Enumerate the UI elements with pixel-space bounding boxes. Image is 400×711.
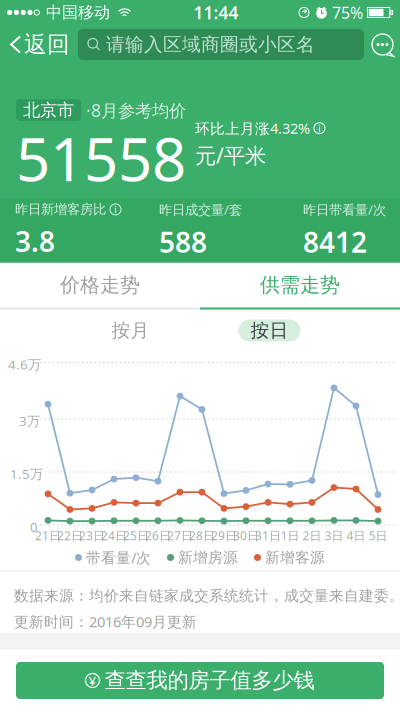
staticText: i	[318, 121, 321, 135]
staticText: 1.5万	[10, 465, 43, 483]
staticText: 请输入区域商圈或小区名	[106, 33, 315, 56]
staticText: 3.8	[15, 223, 55, 260]
staticText: 8412	[303, 223, 367, 260]
staticText: 元/平米	[195, 141, 266, 169]
button[interactable]: 请输入区域商圈或小区名	[78, 29, 364, 60]
staticText: 返回	[24, 31, 70, 58]
button[interactable]: 供需走势	[200, 262, 400, 307]
button[interactable]: ¥	[16, 662, 384, 699]
staticText: 新增房源	[178, 548, 238, 566]
staticText: 3万	[19, 412, 40, 430]
button[interactable]: 返回	[0, 25, 78, 63]
staticText: 3日	[324, 527, 343, 543]
staticText: 31日	[255, 527, 281, 543]
button[interactable]: 按日	[238, 319, 300, 341]
staticText: 21日	[35, 527, 61, 543]
staticText: 昨日新增客房比	[15, 201, 106, 218]
staticText: 供需走势	[260, 273, 340, 297]
staticText: 北京市	[23, 99, 74, 121]
staticText: 查查我的房子值多少钱	[104, 667, 314, 694]
staticText: 22日	[57, 527, 83, 543]
staticText: 5日	[368, 527, 387, 543]
staticText: 4.6万	[8, 355, 41, 373]
staticText: 30日	[233, 527, 259, 543]
staticText: 带看量/次	[86, 548, 151, 567]
staticText: 环比上月涨4.32%	[195, 118, 310, 138]
staticText: 新增客源	[265, 548, 325, 566]
staticText: 27日	[167, 527, 193, 543]
button[interactable]: 消息	[365, 25, 400, 63]
staticText: 11:44	[193, 1, 238, 24]
staticText: 75%	[332, 2, 363, 23]
staticText: 24日	[101, 527, 127, 543]
staticText: 29日	[211, 527, 237, 543]
staticText: 2日	[302, 527, 321, 543]
staticText: 价格走势	[60, 273, 140, 297]
staticText: 0	[30, 518, 38, 536]
staticText: 按日	[250, 319, 288, 342]
staticText: 1日	[280, 527, 299, 543]
staticText: 26日	[145, 527, 171, 543]
staticText: 51558	[16, 118, 186, 198]
staticText: ¥	[88, 672, 96, 689]
staticText: 23日	[79, 527, 105, 543]
staticText: 更新时间：2016年09月更新	[14, 612, 197, 631]
staticText: 25日	[123, 527, 149, 543]
staticText: 中国移动	[46, 3, 110, 22]
staticText: 4日	[346, 527, 365, 543]
staticText: ·8月参考均价	[86, 99, 186, 122]
button[interactable]: 价格走势	[0, 262, 200, 307]
staticText: 数据来源：均价来自链家成交系统统计，成交量来自建委。	[14, 587, 400, 605]
staticText: 588	[159, 223, 207, 260]
staticText: 28日	[189, 527, 215, 543]
button[interactable]: 按月	[99, 319, 161, 341]
staticText: 按月	[111, 319, 149, 342]
staticText: 昨日带看量/次	[303, 201, 386, 218]
staticText: i	[114, 202, 117, 216]
staticText: 昨日成交量/套	[159, 201, 242, 218]
